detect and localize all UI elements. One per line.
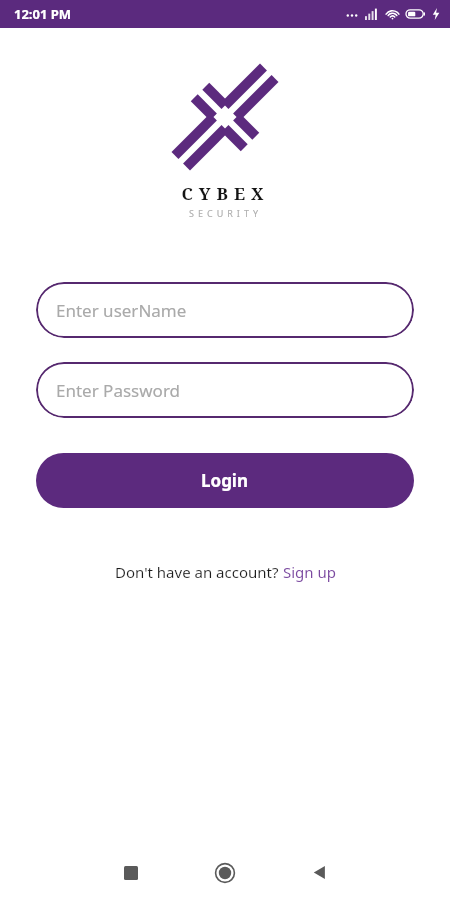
staticText: Sign up	[283, 562, 336, 582]
staticText: Login	[201, 469, 249, 492]
button[interactable]: Login	[36, 453, 414, 508]
staticText: 12:01 PM	[14, 5, 72, 23]
staticText: Enter Password	[56, 379, 181, 402]
other: Cybex Security logo	[157, 58, 293, 176]
button[interactable]: Home	[197, 845, 253, 900]
button[interactable]: Back	[291, 845, 347, 900]
button[interactable]: Enter Password	[36, 362, 414, 418]
staticText: CYBEX	[181, 182, 270, 205]
staticText: Enter userName	[56, 299, 187, 322]
button[interactable]: Sign up	[283, 562, 336, 582]
staticText: SECURITY	[189, 207, 262, 219]
staticText: Don't have an account?	[115, 562, 283, 582]
button[interactable]: Enter userName	[36, 282, 414, 338]
button[interactable]: Recent apps	[103, 845, 159, 900]
